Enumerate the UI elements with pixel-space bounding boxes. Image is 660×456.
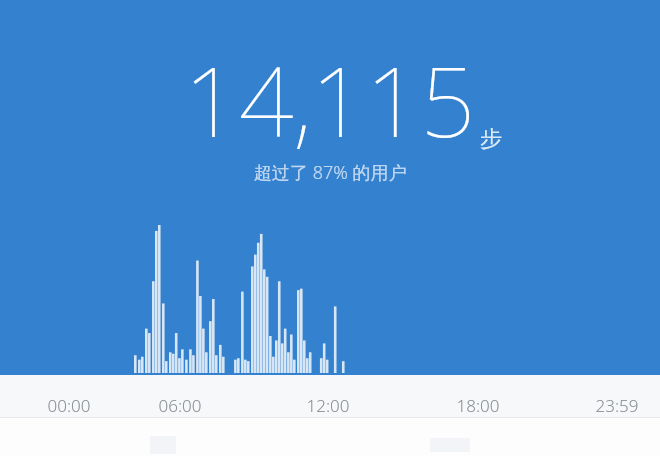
staticText: 18:00 xyxy=(440,394,516,417)
staticText: 步 xyxy=(480,125,502,153)
staticText: 12:00 xyxy=(290,394,366,417)
button[interactable]: 超过了 87% 的用户 xyxy=(254,160,407,185)
staticText: 超过了 87% 的用户 xyxy=(254,160,407,185)
staticText: 06:00 xyxy=(142,394,218,417)
button[interactable]: 14,115 xyxy=(184,34,502,165)
staticText: 23:59 xyxy=(579,394,655,417)
staticText: 00:00 xyxy=(31,394,107,417)
staticText: 14,115 xyxy=(184,34,476,165)
other: Daily step activity chart xyxy=(0,0,660,375)
